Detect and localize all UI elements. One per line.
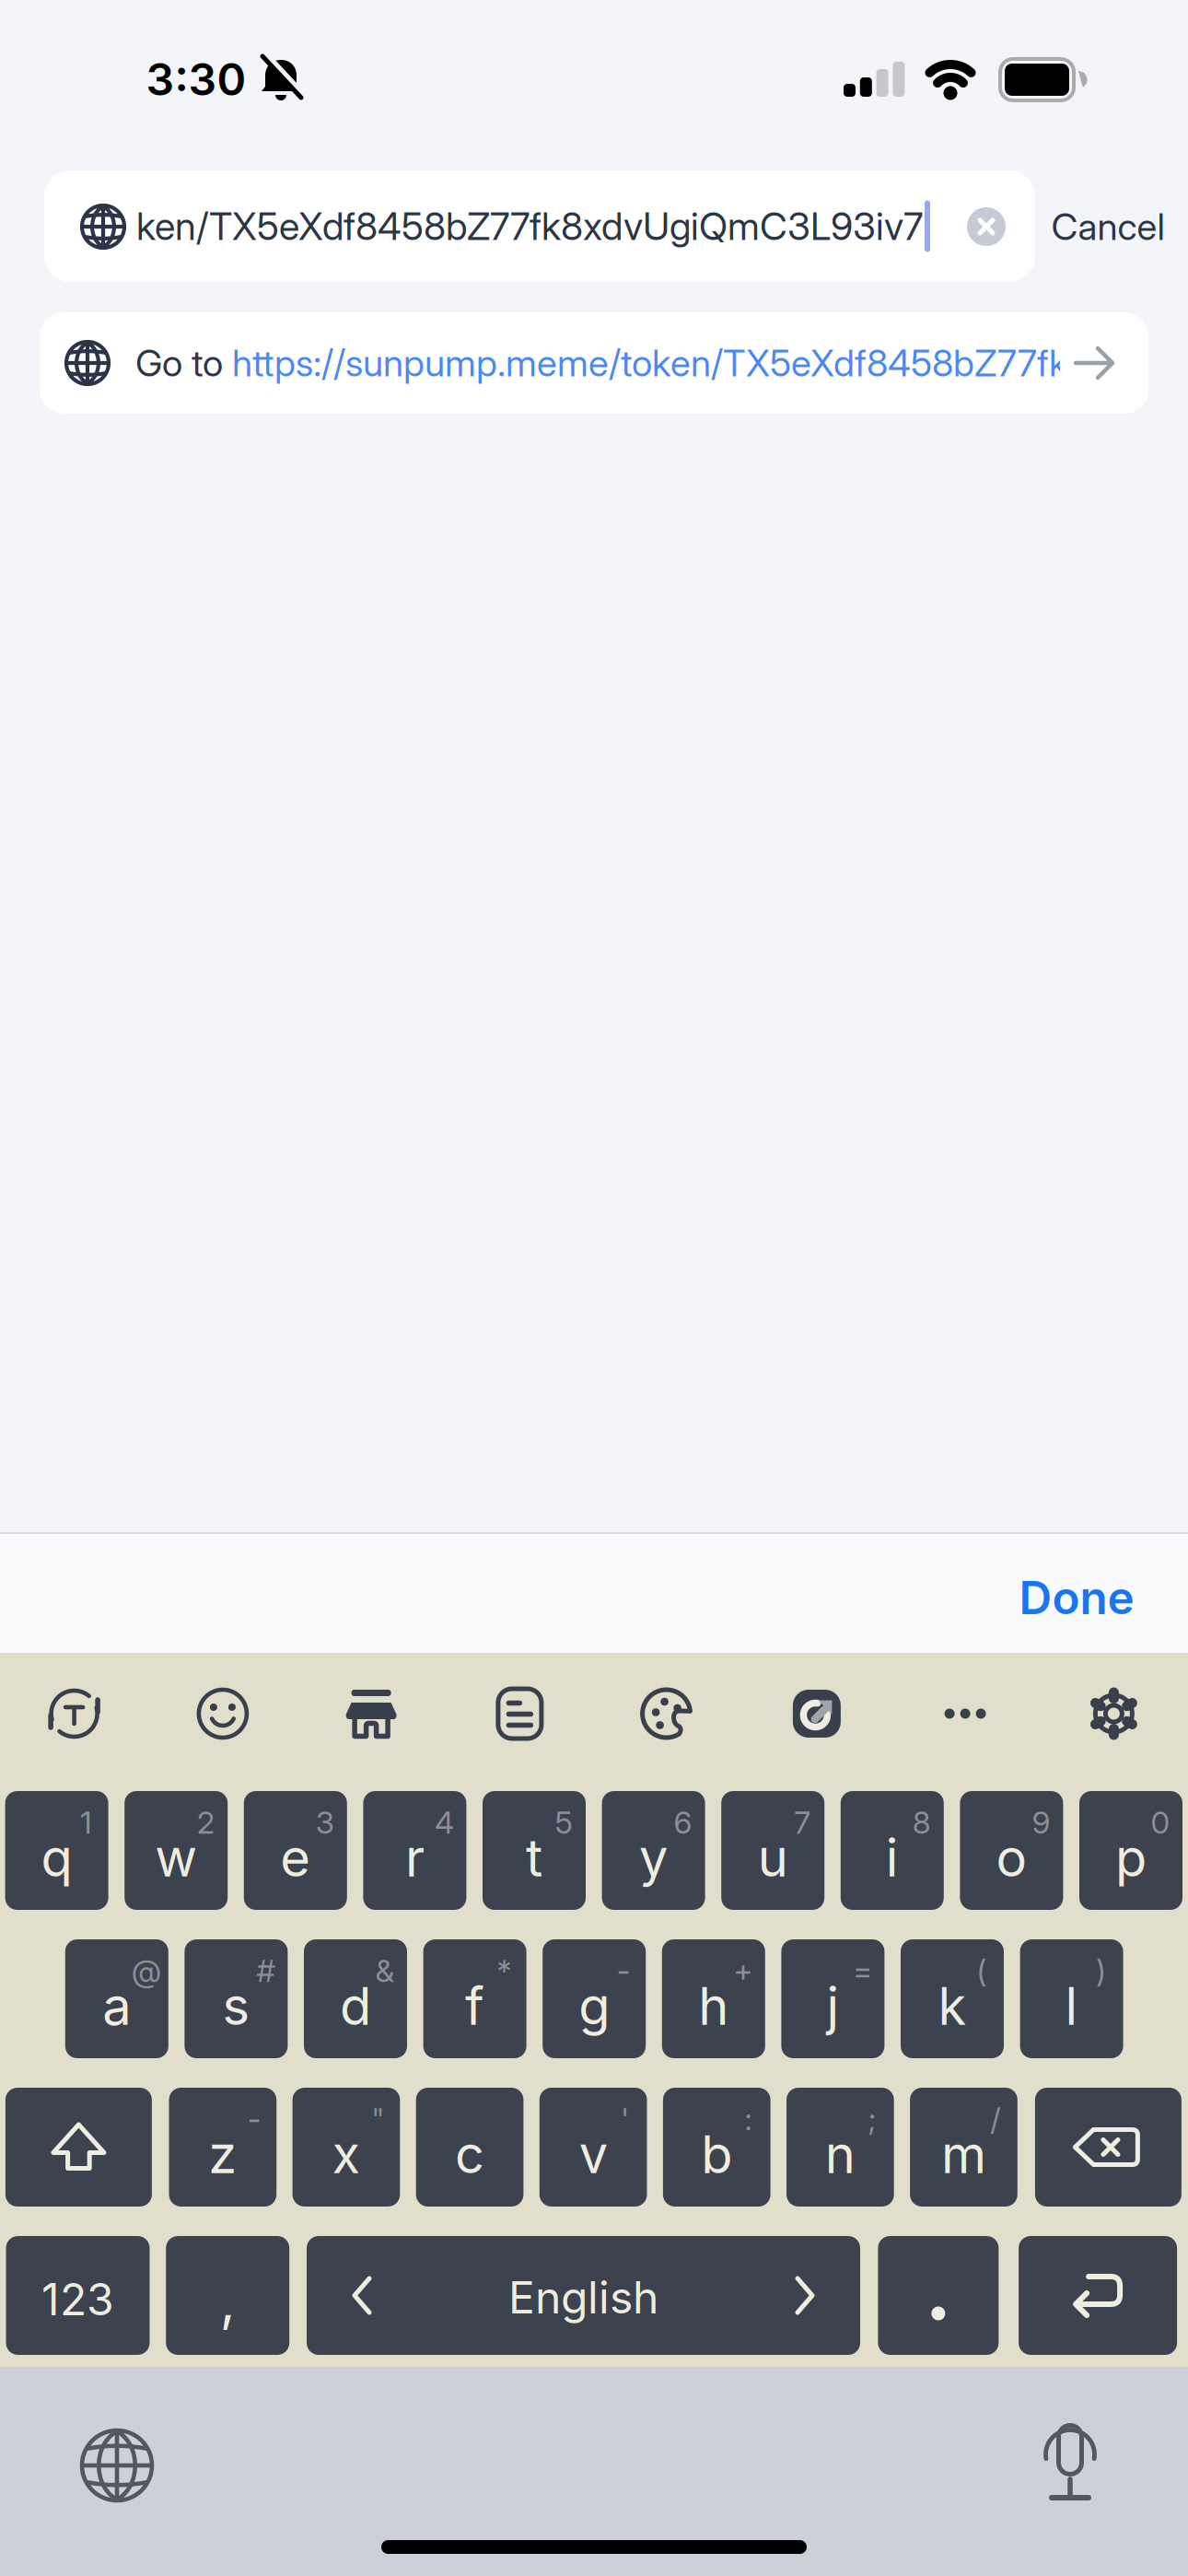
- button[interactable]: Dictation: [1029, 2421, 1112, 2504]
- staticText: a: [102, 1976, 131, 2037]
- staticText: ": [371, 2101, 384, 2137]
- staticText: e: [280, 1827, 311, 1888]
- staticText: ;: [868, 2101, 876, 2137]
- button[interactable]: x: [292, 2088, 400, 2207]
- staticText: 0: [1151, 1804, 1170, 1840]
- staticText: 8: [912, 1804, 931, 1840]
- button[interactable]: Next keyboard: [78, 2426, 156, 2505]
- button[interactable]: k: [901, 1939, 1004, 2058]
- staticText: =: [853, 1953, 872, 1989]
- staticText: s: [222, 1976, 250, 2037]
- button[interactable]: Go to: [40, 312, 1148, 414]
- button[interactable]: Grammarly: [787, 1684, 846, 1743]
- button[interactable]: Shift: [5, 2088, 152, 2207]
- button[interactable]: v: [539, 2088, 647, 2207]
- button[interactable]: g: [543, 1939, 646, 2058]
- staticText: 6: [674, 1804, 692, 1840]
- staticText: 3: [316, 1804, 334, 1840]
- staticText: @: [132, 1953, 161, 1989]
- button[interactable]: a: [65, 1939, 168, 2058]
- button[interactable]: s: [185, 1939, 288, 2058]
- button[interactable]: Text transform: [45, 1684, 104, 1743]
- button[interactable]: Settings: [1084, 1684, 1143, 1743]
- staticText: Go to: [135, 341, 232, 385]
- staticText: n: [825, 2124, 855, 2185]
- button[interactable]: Emoji: [193, 1684, 252, 1743]
- button[interactable]: d: [304, 1939, 407, 2058]
- button[interactable]: w: [125, 1791, 228, 1910]
- button[interactable]: i: [841, 1791, 944, 1910]
- button[interactable]: r: [363, 1791, 466, 1910]
- staticText: 123: [41, 2273, 114, 2325]
- staticText: i: [886, 1827, 899, 1888]
- staticText: u: [758, 1827, 788, 1888]
- button[interactable]: l: [1020, 1939, 1123, 2058]
- button[interactable]: Delete: [1035, 2088, 1181, 2207]
- staticText: f: [465, 1976, 485, 2037]
- staticText: t: [526, 1827, 542, 1888]
- button[interactable]: q: [5, 1791, 108, 1910]
- staticText: +: [733, 1953, 753, 1989]
- staticText: 7: [794, 1804, 811, 1840]
- button[interactable]: y: [602, 1791, 705, 1910]
- staticText: o: [996, 1827, 1027, 1888]
- staticText: -: [617, 1953, 631, 1989]
- staticText: /: [990, 2101, 1000, 2137]
- button[interactable]: e: [244, 1791, 347, 1910]
- staticText: ,: [220, 2269, 235, 2333]
- button[interactable]: Clear text: [967, 207, 1006, 246]
- staticText: https://sunpump.meme/token/TX5eXdf8458bZ…: [232, 341, 1147, 385]
- button[interactable]: p: [1079, 1791, 1182, 1910]
- button[interactable]: Done: [1019, 1571, 1134, 1624]
- staticText: z: [208, 2124, 237, 2185]
- staticText: r: [405, 1827, 424, 1888]
- staticText: 9: [1032, 1804, 1050, 1840]
- staticText: (: [977, 1953, 987, 1989]
- button[interactable]: Period: [878, 2236, 999, 2355]
- staticText: m: [941, 2124, 986, 2185]
- button[interactable]: Notes: [490, 1684, 549, 1743]
- staticText: English: [508, 2271, 658, 2323]
- staticText: 3:30: [146, 53, 246, 105]
- button[interactable]: h: [662, 1939, 765, 2058]
- button[interactable]: j: [781, 1939, 884, 2058]
- button[interactable]: Space, English: [307, 2236, 860, 2355]
- button[interactable]: n: [786, 2088, 894, 2207]
- staticText: h: [698, 1976, 729, 2037]
- button[interactable]: c: [416, 2088, 523, 2207]
- staticText: y: [639, 1827, 668, 1888]
- staticText: 2: [197, 1804, 214, 1840]
- staticText: 4: [435, 1804, 454, 1840]
- staticText: -: [247, 2101, 261, 2137]
- button[interactable]: o: [960, 1791, 1063, 1910]
- staticText: Done: [1019, 1571, 1134, 1624]
- staticText: g: [579, 1976, 610, 2037]
- button[interactable]: b: [663, 2088, 770, 2207]
- staticText: 5: [555, 1804, 572, 1840]
- button[interactable]: Store: [342, 1684, 401, 1743]
- staticText: l: [1065, 1976, 1078, 2037]
- staticText: 1: [80, 1804, 92, 1840]
- button[interactable]: z: [169, 2088, 276, 2207]
- staticText: Cancel: [1051, 205, 1165, 248]
- button[interactable]: t: [483, 1791, 586, 1910]
- button[interactable]: Cancel: [1051, 205, 1165, 248]
- button[interactable]: Address field: [44, 170, 1035, 282]
- staticText: c: [455, 2124, 485, 2185]
- button[interactable]: More: [936, 1684, 995, 1743]
- staticText: w: [155, 1827, 197, 1888]
- button[interactable]: 123: [6, 2236, 150, 2355]
- button[interactable]: f: [423, 1939, 526, 2058]
- staticText: j: [826, 1976, 839, 2037]
- staticText: p: [1115, 1827, 1147, 1888]
- staticText: v: [579, 2124, 607, 2185]
- staticText: d: [340, 1976, 371, 2037]
- button[interactable]: Themes: [639, 1684, 698, 1743]
- staticText: &: [375, 1953, 395, 1989]
- button[interactable]: u: [721, 1791, 824, 1910]
- button[interactable]: m: [910, 2088, 1017, 2207]
- staticText: k: [938, 1976, 967, 2037]
- button[interactable]: ,: [166, 2236, 289, 2355]
- button[interactable]: Return: [1019, 2236, 1177, 2355]
- staticText: :: [745, 2101, 752, 2137]
